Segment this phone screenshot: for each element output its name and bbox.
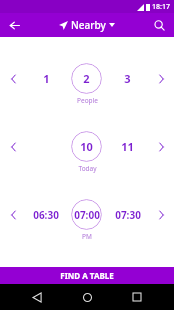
staticText: 18:17 (152, 2, 170, 12)
button[interactable]: Recents (124, 284, 150, 310)
staticText: People (77, 96, 98, 105)
staticText: 07:30 (115, 208, 141, 222)
staticText: 1 (43, 71, 50, 86)
button[interactable]: 3 (102, 63, 153, 94)
button[interactable]: Previous (5, 207, 21, 223)
button[interactable]: 06:30 (21, 199, 71, 230)
staticText: 11 (121, 139, 134, 154)
staticText: 06:30 (33, 208, 59, 222)
button[interactable]: Back (24, 284, 50, 310)
button[interactable]: Next (153, 207, 169, 223)
button[interactable]: 11 (102, 131, 153, 162)
button[interactable]: Next (153, 71, 169, 87)
button[interactable]: 10 (71, 131, 102, 162)
staticText: 10 (80, 139, 93, 154)
staticText: Today (78, 164, 97, 173)
staticText: Nearby (71, 18, 106, 32)
button[interactable]: Next (153, 139, 169, 155)
staticText: 2 (83, 71, 90, 86)
button[interactable]: Previous (5, 139, 21, 155)
button[interactable]: Nearby (55, 16, 119, 34)
button[interactable]: 2 (71, 63, 102, 94)
button[interactable]: 07:00 (71, 199, 102, 230)
staticText: PM (82, 232, 92, 241)
button[interactable]: 1 (21, 63, 71, 94)
button[interactable]: Back (4, 15, 24, 35)
button[interactable]: Home (74, 284, 100, 310)
staticText: 07:00 (74, 208, 100, 222)
button[interactable]: Search (149, 15, 169, 35)
staticText: FIND A TABLE (60, 270, 114, 281)
button[interactable]: FIND A TABLE (0, 267, 174, 284)
staticText: 3 (124, 71, 131, 86)
button[interactable]: Previous (5, 71, 21, 87)
button[interactable]: 07:30 (102, 199, 153, 230)
